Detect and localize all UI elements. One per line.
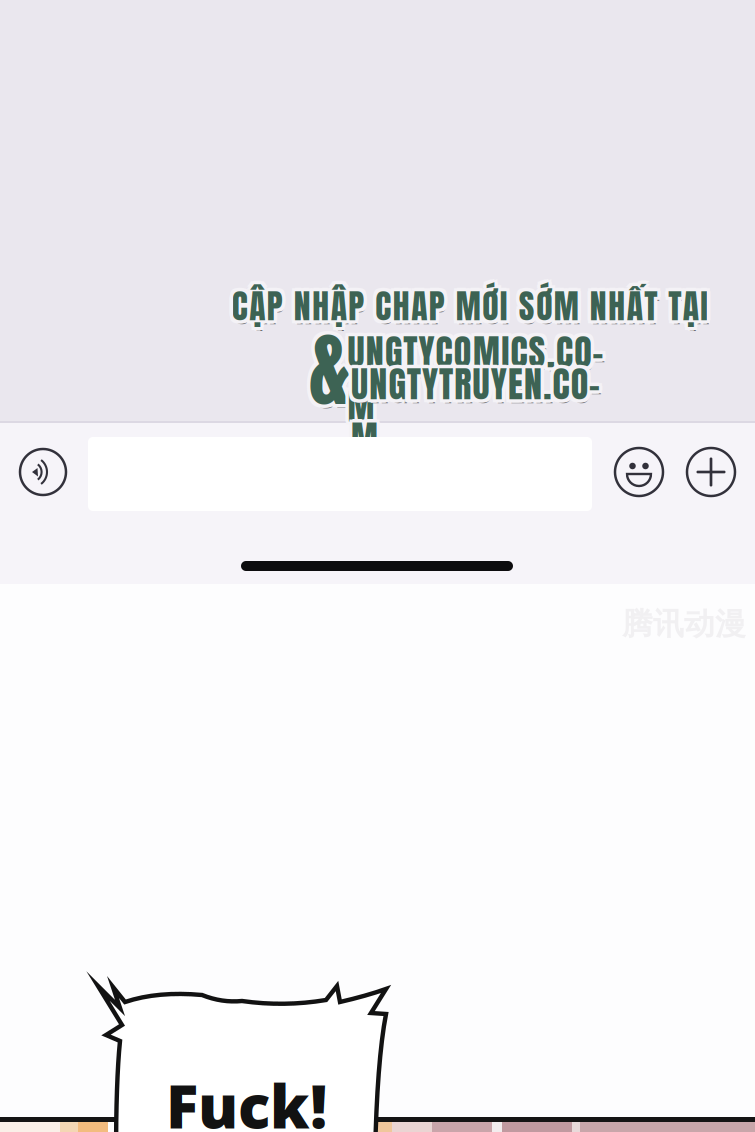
- staticText: UNGTYCOMICS.COM: [345, 322, 617, 376]
- staticText: 腾讯动漫: [622, 605, 746, 643]
- staticText: CẬP NHẬP CHAP MỚI SỚM NHẤT TẠI: [232, 281, 708, 331]
- staticText: &: [305, 310, 347, 430]
- staticText: &: [309, 313, 351, 434]
- staticText: UNGTYCOMICS.COM: [348, 321, 620, 376]
- staticText: UNGTYTRUYEN.COM: [351, 357, 617, 411]
- staticText: UNGTYCOMICS.COM: [351, 322, 623, 376]
- staticText: UNGTYCOMICS.COM: [345, 328, 617, 382]
- staticText: &: [309, 306, 351, 427]
- staticText: &: [311, 314, 353, 434]
- staticText: CẬP NHẬP CHAP MỚI SỚM NHẤT TẠI: [235, 284, 711, 334]
- staticText: CẬP NHẬP CHAP MỚI SỚM NHẤT TẠI: [229, 278, 705, 328]
- staticText: CẬP NHẬP CHAP MỚI SỚM NHẤT TẠI: [228, 281, 705, 331]
- staticText: &: [309, 310, 351, 430]
- staticText: UNGTYCOMICS.COM: [344, 325, 617, 379]
- staticText: UNGTYTRUYEN.COM: [354, 360, 620, 414]
- staticText: UNGTYTRUYEN.COM: [353, 361, 619, 415]
- staticText: CẬP NHẬP CHAP MỚI SỚM NHẤT TẠI: [229, 284, 705, 334]
- staticText: &: [312, 307, 354, 427]
- button[interactable]: Voice message: [11, 440, 75, 504]
- button[interactable]: Add attachment: [678, 439, 744, 505]
- staticText: UNGTYTRUYEN.COM: [348, 354, 614, 408]
- staticText: UNGTYCOMICS.COM: [351, 325, 624, 379]
- staticText: CẬP NHẬP CHAP MỚI SỚM NHẤT TẠI: [232, 277, 708, 328]
- button[interactable]: Emoji: [606, 439, 672, 505]
- staticText: UNGTYTRUYEN.COM: [348, 360, 614, 414]
- staticText: CẬP NHẬP CHAP MỚI SỚM NHẤT TẠI: [235, 278, 711, 328]
- staticText: &: [306, 313, 348, 433]
- staticText: &: [306, 307, 348, 427]
- staticText: UNGTYCOMICS.COM: [350, 329, 622, 383]
- staticText: UNGTYTRUYEN.COM: [351, 353, 617, 408]
- staticText: UNGTYTRUYEN.COM: [354, 354, 620, 408]
- staticText: &: [312, 313, 354, 433]
- staticText: UNGTYCOMICS.COM: [351, 328, 623, 382]
- staticText: UNGTYTRUYEN.COM: [355, 357, 620, 411]
- staticText: CẬP NHẬP CHAP MỚI SỚM NHẤT TẠI: [235, 281, 712, 331]
- staticText: UNGTYTRUYEN.COM: [351, 360, 617, 415]
- staticText: CẬP NHẬP CHAP MỚI SỚM NHẤT TẠI: [234, 285, 710, 335]
- staticText: UNGTYTRUYEN.COM: [348, 357, 613, 411]
- staticText: Fuck!: [166, 1065, 327, 1132]
- staticText: UNGTYCOMICS.COM: [348, 328, 620, 383]
- staticText: &: [312, 310, 354, 430]
- staticText: CẬP NHẬP CHAP MỚI SỚM NHẤT TẠI: [232, 284, 708, 335]
- staticText: UNGTYCOMICS.COM: [348, 325, 620, 379]
